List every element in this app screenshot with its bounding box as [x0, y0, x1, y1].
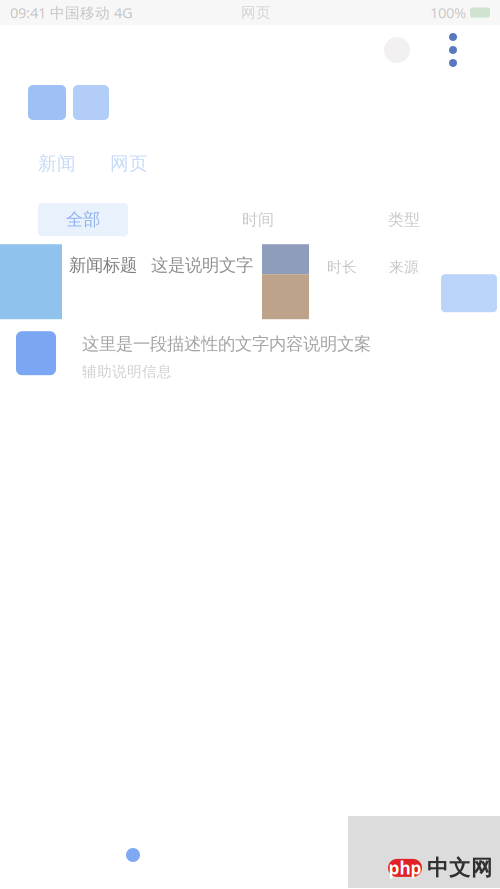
- staticText: 这里是一段描述性的文字内容说明文案: [82, 333, 371, 354]
- button[interactable]: 类型: [388, 210, 420, 229]
- staticText: 来源: [389, 258, 419, 276]
- button[interactable]: 新闻标题: [0, 236, 500, 319]
- staticText: 新闻标题: [69, 255, 137, 276]
- staticText: 时长: [327, 258, 357, 276]
- staticText: 网页: [110, 152, 148, 175]
- button[interactable]: 网页: [110, 152, 148, 175]
- staticText: 100%: [430, 3, 466, 22]
- button[interactable]: More options: [438, 26, 468, 74]
- staticText: 中: [427, 855, 448, 881]
- button[interactable]: 全部: [38, 203, 128, 236]
- button[interactable]: 新闻: [38, 152, 76, 175]
- staticText: 辅助说明信息: [82, 362, 172, 380]
- button[interactable]: 时间: [242, 210, 274, 229]
- staticText: 网: [471, 855, 492, 881]
- staticText: 时间: [242, 210, 274, 229]
- button[interactable]: Account: [372, 26, 422, 74]
- staticText: 09:41 中国移动 4G: [10, 3, 133, 22]
- staticText: 文: [449, 855, 470, 881]
- staticText: 全部: [66, 209, 100, 230]
- staticText: 类型: [388, 210, 420, 229]
- staticText: 新闻: [38, 152, 76, 175]
- button[interactable]: 这里是一段描述性的文字内容说明文案: [0, 319, 500, 380]
- staticText: 网页: [241, 3, 271, 21]
- button[interactable]: Scroll to top: [116, 838, 150, 872]
- staticText: 这是说明文字: [151, 255, 253, 276]
- staticText: php: [388, 856, 421, 879]
